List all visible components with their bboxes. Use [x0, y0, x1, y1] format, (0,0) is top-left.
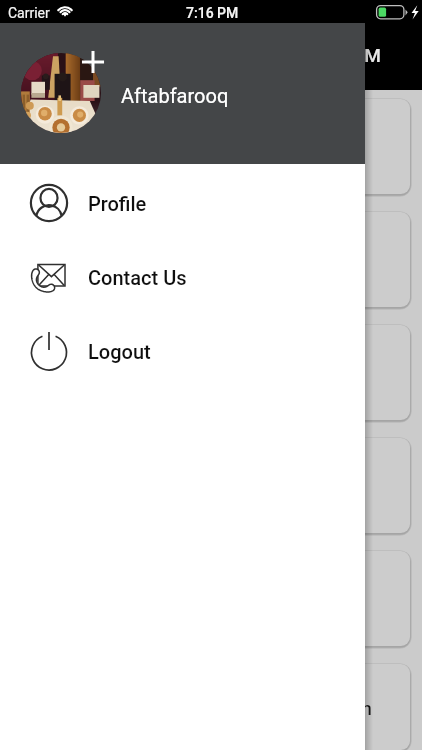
staticText: 7:16 PM [186, 5, 239, 21]
staticText: Chicken [307, 698, 372, 719]
staticText: Carrier [8, 5, 50, 21]
button[interactable]: Profile [0, 166, 365, 240]
staticText: FOOD GRAM [273, 44, 381, 66]
staticText: Contact Us [88, 266, 187, 289]
staticText: Aftabfarooq [121, 84, 229, 107]
button[interactable]: Add photo [81, 50, 105, 74]
button[interactable]: Contact Us [0, 240, 365, 314]
button[interactable]: Logout [0, 314, 365, 388]
staticText: Profile [88, 192, 147, 215]
staticText: Logout [88, 340, 151, 363]
